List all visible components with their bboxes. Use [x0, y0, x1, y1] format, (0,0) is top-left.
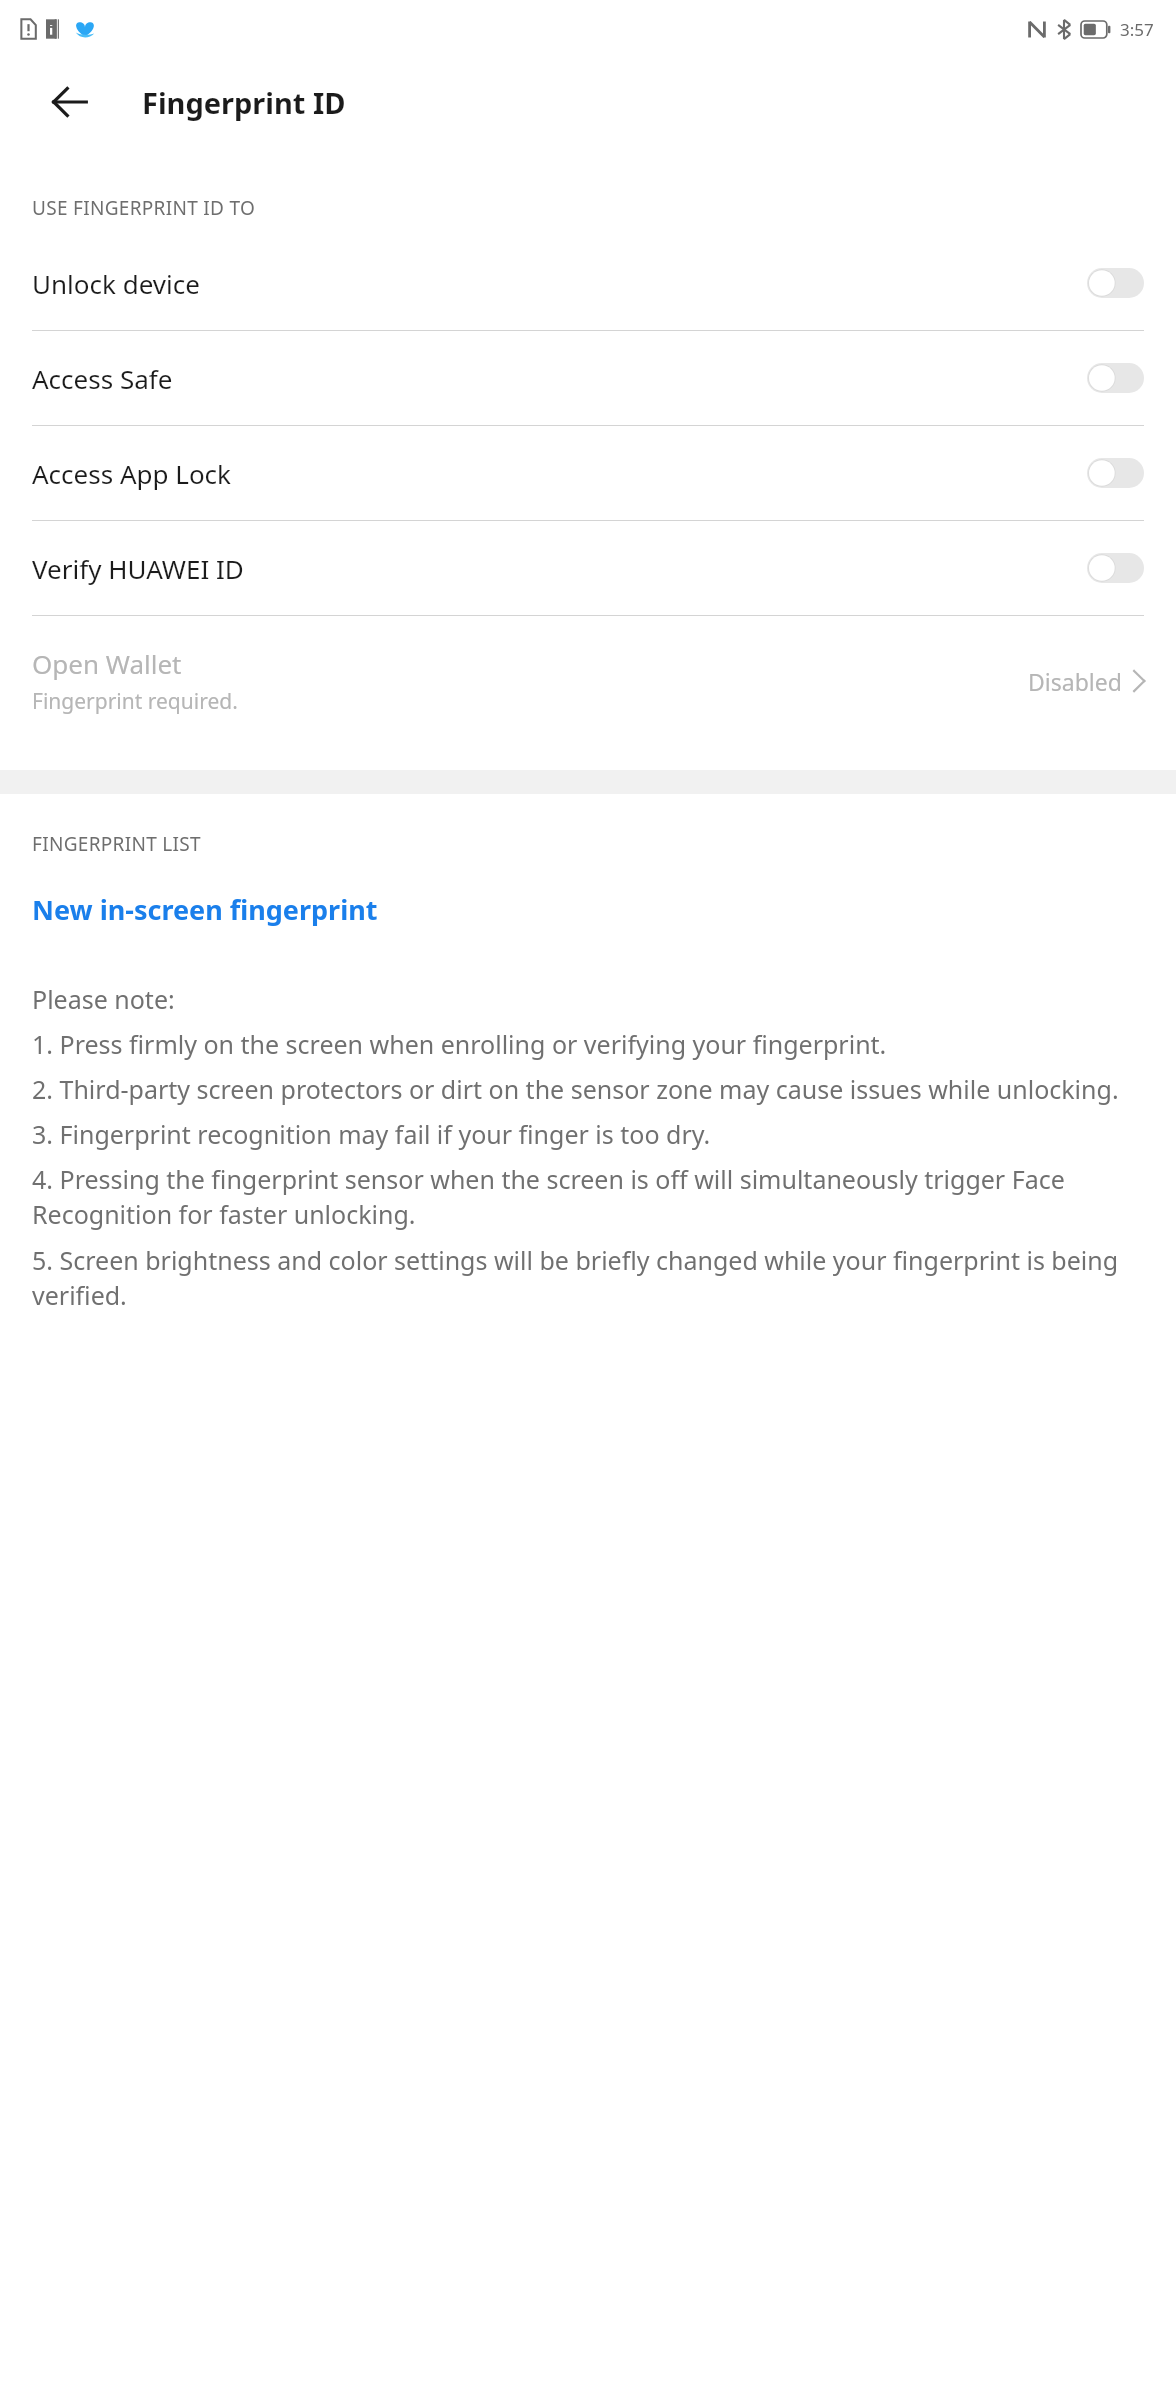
staticText: Verify HUAWEI ID — [32, 551, 1087, 586]
button[interactable]: Unlock device — [0, 236, 1176, 330]
staticText: 1. Press firmly on the screen when enrol… — [32, 1027, 887, 1061]
button[interactable]: Toggle off — [1087, 553, 1144, 583]
staticText: 4. Pressing the fingerprint sensor when … — [32, 1162, 1144, 1232]
button[interactable]: Verify HUAWEI ID — [0, 521, 1176, 615]
button[interactable]: Open Wallet — [0, 616, 1176, 746]
staticText: Please note: — [32, 982, 175, 1016]
staticText: Access App Lock — [32, 456, 1087, 491]
staticText: 5. Screen brightness and color settings … — [32, 1243, 1144, 1313]
staticText: 3:57 — [1120, 18, 1154, 41]
button[interactable]: Back — [44, 76, 96, 128]
staticText: 2. Third-party screen protectors or dirt… — [32, 1072, 1119, 1106]
staticText: FINGERPRINT LIST — [32, 831, 201, 857]
staticText: Fingerprint ID — [142, 83, 346, 122]
staticText: Access Safe — [32, 361, 1087, 396]
staticText: Disabled — [1028, 666, 1122, 697]
staticText: Open Wallet — [32, 646, 182, 681]
staticText: Fingerprint required. — [32, 687, 238, 716]
button[interactable]: Access App Lock — [0, 426, 1176, 520]
button[interactable]: Toggle off — [1087, 363, 1144, 393]
button[interactable]: Toggle off — [1087, 458, 1144, 488]
staticText: USE FINGERPRINT ID TO — [32, 195, 256, 221]
button[interactable]: Toggle off — [1087, 268, 1144, 298]
button[interactable]: New in-screen fingerprint — [0, 872, 1176, 946]
staticText: New in-screen fingerprint — [32, 891, 378, 928]
staticText: Unlock device — [32, 266, 1087, 301]
button[interactable]: Access Safe — [0, 331, 1176, 425]
staticText: 3. Fingerprint recognition may fail if y… — [32, 1117, 711, 1151]
